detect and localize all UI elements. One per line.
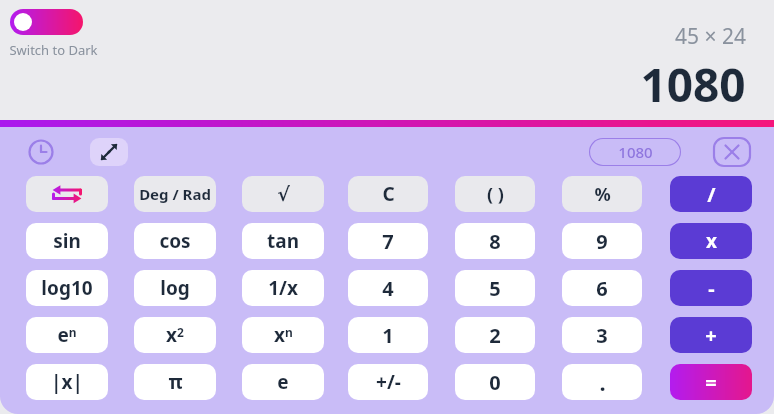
staticText: Deg / Rad [139, 184, 211, 204]
button[interactable]: 7 [348, 223, 428, 259]
button[interactable]: 8 [455, 223, 535, 259]
staticText: +/- [376, 369, 401, 395]
staticText: π [168, 369, 183, 395]
staticText: cos [159, 228, 191, 254]
button[interactable]: Swap [26, 176, 108, 212]
button[interactable]: 4 [348, 270, 428, 306]
button[interactable]: x [670, 223, 752, 259]
staticText: Switch to Dark [9, 41, 98, 59]
button[interactable]: - [670, 270, 752, 306]
button[interactable]: en [26, 317, 108, 353]
staticText: 1/x [268, 275, 298, 301]
staticText: 7 [382, 228, 394, 255]
button[interactable]: log [134, 270, 216, 306]
button[interactable]: Switch to Dark [10, 9, 83, 35]
button[interactable]: Deg / Rad [134, 176, 216, 212]
staticText: 0 [489, 369, 501, 396]
button[interactable]: x2 [134, 317, 216, 353]
button[interactable]: 1/x [242, 270, 324, 306]
staticText: 1080 [640, 53, 746, 116]
staticText: xn [274, 322, 293, 348]
staticText: 3 [596, 322, 608, 349]
button[interactable]: 5 [455, 270, 535, 306]
staticText: log10 [41, 275, 93, 301]
button[interactable]: 0 [455, 364, 535, 400]
button[interactable]: 2 [455, 317, 535, 353]
button[interactable]: C [348, 176, 428, 212]
staticText: % [594, 182, 611, 207]
button[interactable]: % [562, 176, 642, 212]
staticText: - [708, 275, 715, 302]
staticText: 45 × 24 [675, 22, 746, 51]
button[interactable]: +/- [348, 364, 428, 400]
staticText: 2 [489, 322, 501, 349]
button[interactable]: xn [242, 317, 324, 353]
button[interactable]: 1080 [589, 138, 681, 166]
staticText: C [382, 181, 395, 207]
button[interactable]: ( ) [455, 176, 535, 212]
staticText: √ [277, 183, 290, 205]
button[interactable]: |x| [26, 364, 108, 400]
staticText: x2 [166, 322, 184, 348]
button[interactable]: Clear [714, 138, 750, 166]
staticText: sin [53, 228, 81, 254]
staticText: 8 [489, 228, 501, 255]
staticText: . [599, 367, 606, 397]
staticText: 9 [596, 228, 608, 255]
staticText: tan [267, 228, 299, 254]
staticText: 4 [382, 275, 394, 302]
button[interactable]: = [670, 364, 752, 400]
button[interactable]: cos [134, 223, 216, 259]
button[interactable]: e [242, 364, 324, 400]
button[interactable]: 6 [562, 270, 642, 306]
button[interactable]: Expand [90, 138, 128, 166]
staticText: en [57, 322, 77, 348]
staticText: = [705, 369, 717, 396]
button[interactable]: + [670, 317, 752, 353]
staticText: |x| [51, 369, 83, 395]
button[interactable]: 3 [562, 317, 642, 353]
button[interactable]: log10 [26, 270, 108, 306]
button[interactable]: √ [242, 176, 324, 212]
staticText: e [277, 369, 289, 395]
staticText: 1080 [618, 142, 653, 162]
button[interactable]: π [134, 364, 216, 400]
button[interactable]: tan [242, 223, 324, 259]
staticText: x [706, 228, 717, 254]
button[interactable]: 1 [348, 317, 428, 353]
staticText: 6 [596, 275, 608, 302]
staticText: 1 [382, 322, 394, 349]
staticText: / [707, 181, 716, 208]
staticText: + [705, 322, 717, 349]
staticText: 5 [489, 275, 501, 302]
button[interactable]: 9 [562, 223, 642, 259]
button[interactable]: . [562, 364, 642, 400]
staticText: ( ) [487, 182, 504, 207]
button[interactable]: sin [26, 223, 108, 259]
button[interactable]: / [670, 176, 752, 212]
button[interactable]: History [26, 137, 56, 167]
staticText: log [160, 275, 190, 301]
